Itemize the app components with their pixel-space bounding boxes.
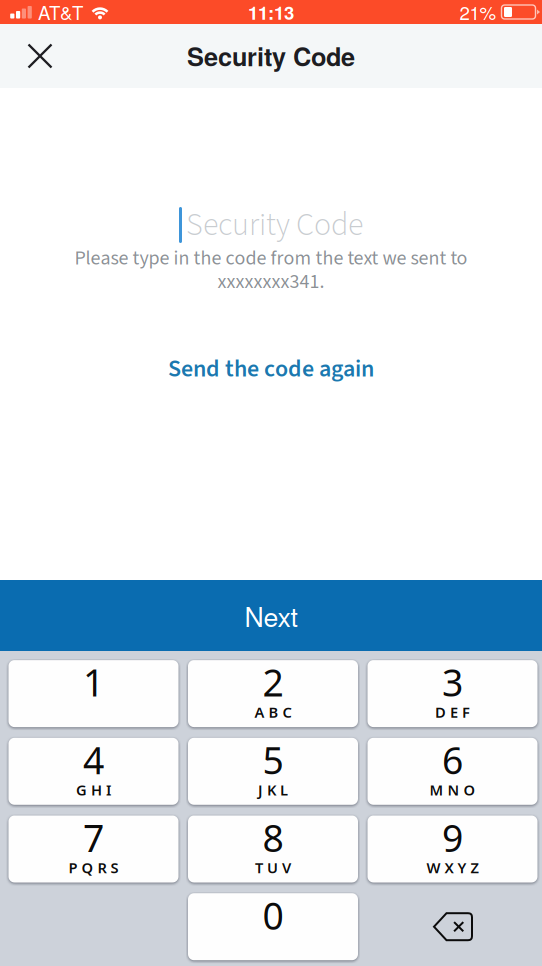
staticText: 6 bbox=[442, 734, 463, 785]
staticText: T U V bbox=[255, 857, 291, 877]
staticText: Send the code again bbox=[168, 352, 374, 386]
staticText: AT&T bbox=[38, 0, 83, 25]
staticText: xxxxxxxx341. bbox=[217, 267, 324, 296]
staticText: 1 bbox=[83, 657, 104, 707]
button[interactable]: Close bbox=[0, 24, 80, 88]
button[interactable]: Delete bbox=[367, 893, 537, 960]
staticText: 5 bbox=[262, 734, 283, 785]
button[interactable]: 9 bbox=[367, 815, 537, 882]
button[interactable]: Next bbox=[0, 580, 542, 651]
staticText: Next bbox=[244, 596, 297, 635]
staticText: Security Code bbox=[186, 202, 363, 248]
staticText: 7 bbox=[83, 812, 104, 863]
button[interactable]: 6 bbox=[367, 738, 537, 805]
button[interactable]: 1 bbox=[8, 660, 178, 727]
staticText: Security Code bbox=[187, 38, 355, 74]
staticText: A B C bbox=[254, 702, 291, 722]
staticText: 21% bbox=[459, 0, 496, 25]
staticText: 0 bbox=[262, 890, 283, 941]
button[interactable]: 5 bbox=[188, 738, 358, 805]
staticText: M N O bbox=[429, 780, 475, 800]
button[interactable]: 0 bbox=[188, 893, 358, 960]
button[interactable]: 3 bbox=[367, 660, 537, 727]
staticText: 9 bbox=[442, 812, 463, 863]
button[interactable]: Send the code again bbox=[144, 341, 398, 397]
staticText: G H I bbox=[76, 780, 111, 800]
button[interactable]: 8 bbox=[188, 815, 358, 882]
staticText: D E F bbox=[435, 702, 470, 722]
staticText: P Q R S bbox=[68, 857, 118, 877]
button[interactable]: 7 bbox=[8, 815, 178, 882]
staticText: J K L bbox=[258, 780, 288, 800]
staticText: Please type in the code from the text we… bbox=[74, 244, 467, 272]
staticText: 3 bbox=[442, 657, 463, 707]
button[interactable]: 4 bbox=[8, 738, 178, 805]
staticText: 11:13 bbox=[248, 0, 294, 25]
staticText: W X Y Z bbox=[426, 857, 478, 877]
staticText: 8 bbox=[262, 812, 283, 863]
button[interactable]: 2 bbox=[188, 660, 358, 727]
staticText: 2 bbox=[262, 657, 283, 707]
staticText: 4 bbox=[83, 734, 104, 785]
